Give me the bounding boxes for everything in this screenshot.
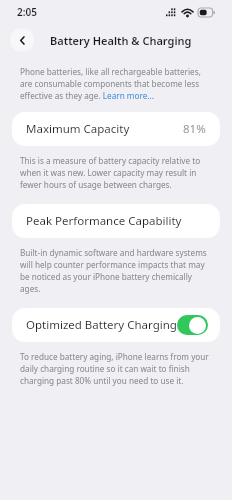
staticText: Phone batteries, like all rechargeable b… xyxy=(20,66,212,101)
staticText: Maximum Capacity xyxy=(26,121,130,137)
button[interactable]: Optimized Battery Charging xyxy=(12,308,220,342)
staticText: This is a measure of battery capacity re… xyxy=(20,155,212,190)
button[interactable]: Peak Performance Capability xyxy=(12,204,220,238)
button[interactable]: Maximum Capacity xyxy=(12,112,220,146)
staticText: Built-in dynamic software and hardware s… xyxy=(20,247,212,294)
button[interactable]: Back xyxy=(10,28,34,52)
staticText: 2:05 xyxy=(17,5,37,19)
staticText: To reduce battery aging, iPhone learns f… xyxy=(20,351,212,386)
button[interactable]: Optimized Battery Charging toggle xyxy=(177,315,208,335)
staticText: Peak Performance Capability xyxy=(26,213,182,229)
staticText: Battery Health & Charging xyxy=(50,33,192,48)
staticText: Optimized Battery Charging xyxy=(26,317,177,333)
staticText: 81% xyxy=(183,121,206,137)
